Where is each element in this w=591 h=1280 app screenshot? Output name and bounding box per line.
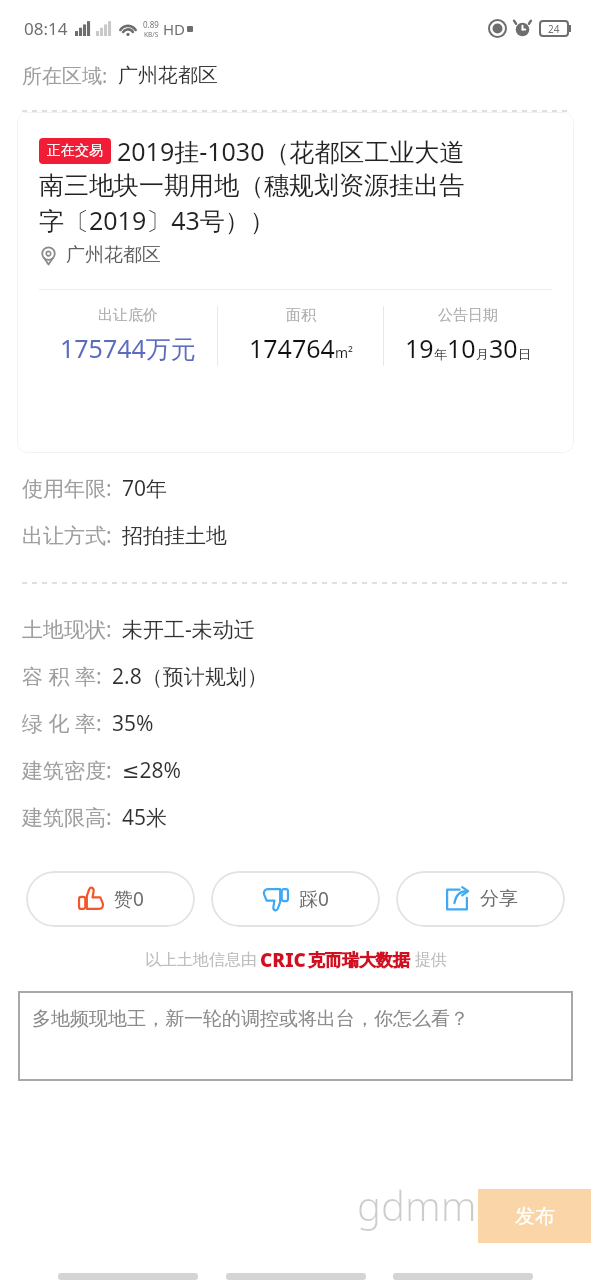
staticText: 南三地块一期用地（穗规划资源挂出告	[39, 170, 464, 201]
staticText: 踩0	[299, 886, 329, 912]
staticText: 绿 化 率:	[22, 709, 102, 738]
staticText: 建筑密度:	[22, 756, 112, 785]
staticText: 正在交易	[47, 142, 103, 160]
staticText: 提供	[415, 950, 447, 970]
staticText: 35%	[112, 709, 154, 738]
staticText: 2.8（预计规划）	[112, 662, 268, 691]
button[interactable]: 发布	[478, 1189, 591, 1243]
staticText: HD	[163, 19, 186, 39]
staticText: 出让底价	[98, 306, 158, 325]
staticText: 以上土地信息由	[145, 950, 257, 970]
button[interactable]: 正在交易	[17, 112, 574, 453]
staticText: 19	[405, 331, 434, 365]
staticText: 10	[447, 331, 476, 365]
staticText: CRIC	[260, 947, 306, 973]
staticText: 年	[434, 346, 447, 362]
staticText: ≤28%	[122, 756, 182, 785]
staticText: 容 积 率:	[22, 662, 102, 691]
staticText: 广州花都区	[118, 63, 218, 88]
staticText: 出让方式:	[22, 521, 112, 550]
button[interactable]: 多地频现地王，新一轮的调控或将出台，你怎么看？	[18, 991, 573, 1081]
staticText: KB/S	[144, 30, 159, 39]
staticText: gdmm.com	[357, 1178, 565, 1232]
staticText: 招拍挂土地	[122, 523, 227, 549]
staticText: 未开工-未动迁	[122, 615, 255, 644]
staticText: 面积	[286, 306, 316, 325]
staticText: 2019挂-1030（花都区工业大道	[117, 134, 465, 168]
staticText: 0.89	[143, 19, 159, 30]
staticText: 月	[476, 346, 489, 362]
staticText: m²	[335, 343, 353, 362]
staticText: 克而瑞大数据	[308, 950, 410, 971]
staticText: 45米	[122, 803, 168, 832]
staticText: 发布	[515, 1204, 555, 1229]
button[interactable]: 踩0	[211, 871, 380, 927]
staticText: 24	[548, 22, 560, 36]
staticText: 使用年限:	[22, 474, 112, 503]
button[interactable]: 赞0	[26, 871, 195, 927]
staticText: 08:14	[24, 17, 68, 40]
staticText: 土地现状:	[22, 615, 112, 644]
staticText: 建筑限高:	[22, 803, 112, 832]
staticText: 30	[489, 331, 518, 365]
staticText: 公告日期	[438, 306, 498, 325]
staticText: 赞0	[114, 886, 144, 912]
staticText: 70年	[122, 474, 168, 503]
button[interactable]: 分享	[396, 871, 565, 927]
staticText: 分享	[480, 887, 518, 911]
staticText: 174764	[249, 331, 335, 365]
staticText: 多地频现地王，新一轮的调控或将出台，你怎么看？	[32, 1007, 469, 1031]
staticText: 175744万元	[60, 331, 196, 365]
staticText: 广州花都区	[66, 243, 161, 267]
staticText: 字〔2019〕43号））	[39, 203, 275, 237]
staticText: 所在区域:	[22, 62, 108, 89]
staticText: 日	[518, 346, 531, 362]
